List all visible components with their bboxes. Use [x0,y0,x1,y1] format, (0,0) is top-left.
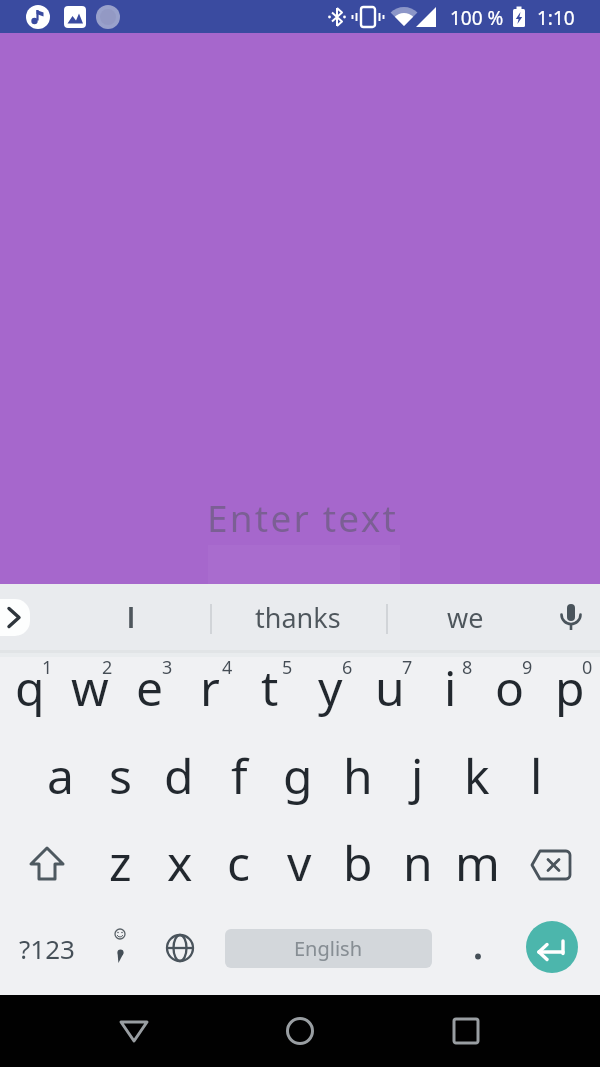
button[interactable]: thanks [218,589,378,645]
staticText: 8 [462,655,473,680]
button[interactable]: t [241,652,299,722]
button[interactable]: y [301,652,359,722]
staticText: p [555,655,585,720]
button[interactable]: we [395,589,535,645]
button[interactable]: i [421,652,479,722]
staticText: r [200,655,220,720]
button[interactable] [95,920,145,980]
staticText: x [167,830,193,895]
staticText: 4 [222,655,233,680]
button[interactable] [526,921,578,973]
staticText: t [261,655,279,720]
staticText: n [403,830,433,895]
button[interactable] [436,1001,496,1061]
button[interactable] [456,926,500,970]
staticText: z [109,830,132,895]
button[interactable] [521,835,585,895]
staticText: m [455,830,500,895]
button[interactable]: Enter text [0,33,600,584]
staticText: v [287,830,312,895]
button[interactable]: w [61,652,119,722]
staticText: j [411,743,424,808]
button[interactable]: p [541,652,599,722]
staticText: b [343,830,373,895]
button[interactable]: l [507,740,565,810]
button[interactable]: f [210,740,268,810]
button[interactable]: s [91,740,149,810]
staticText: l [530,743,543,808]
button[interactable]: k [448,740,506,810]
staticText: 7 [402,655,413,680]
button[interactable]: b [329,827,387,897]
button[interactable]: c [210,827,268,897]
staticText: h [343,743,373,808]
staticText: 1 [42,655,53,680]
button[interactable]: o [481,652,539,722]
staticText: 0 [582,655,593,680]
staticText: ?123 [19,931,75,966]
staticText: English [294,935,363,962]
button[interactable]: ?123 [7,918,87,978]
staticText: 2 [102,655,113,680]
button[interactable]: h [329,740,387,810]
button[interactable]: v [270,827,328,897]
staticText: q [15,655,45,720]
button[interactable]: a [31,740,89,810]
button[interactable] [17,835,77,895]
button[interactable] [270,1001,330,1061]
button[interactable]: d [150,740,208,810]
button[interactable] [158,926,202,970]
staticText: i [444,655,457,720]
staticText: 9 [522,655,533,680]
staticText: a [47,743,74,808]
staticText: y [318,655,343,720]
staticText: g [283,743,313,808]
button[interactable]: e [121,652,179,722]
staticText: thanks [255,599,341,636]
staticText: f [231,743,248,808]
staticText: u [375,655,405,720]
staticText: k [464,743,490,808]
staticText: e [136,655,164,720]
staticText: 3 [162,655,173,680]
staticText: 5 [282,655,293,680]
staticText: 1:10 [537,5,575,31]
button[interactable] [56,589,206,645]
button[interactable] [104,1001,164,1061]
staticText: 100 % [450,5,504,31]
staticText: c [227,830,251,895]
button[interactable]: n [389,827,447,897]
button[interactable]: x [151,827,209,897]
staticText: w [71,655,109,720]
button[interactable]: m [448,827,506,897]
button[interactable]: g [269,740,327,810]
button[interactable]: j [388,740,446,810]
staticText: d [164,743,194,808]
button[interactable]: u [361,652,419,722]
button[interactable] [0,599,30,636]
staticText: we [447,599,484,636]
staticText: Enter text [207,492,398,542]
button[interactable]: q [1,652,59,722]
staticText: 6 [342,655,353,680]
staticText: o [495,655,525,720]
button[interactable]: z [91,827,149,897]
button[interactable]: r [181,652,239,722]
staticText: s [109,743,132,808]
button[interactable]: English [225,929,432,968]
